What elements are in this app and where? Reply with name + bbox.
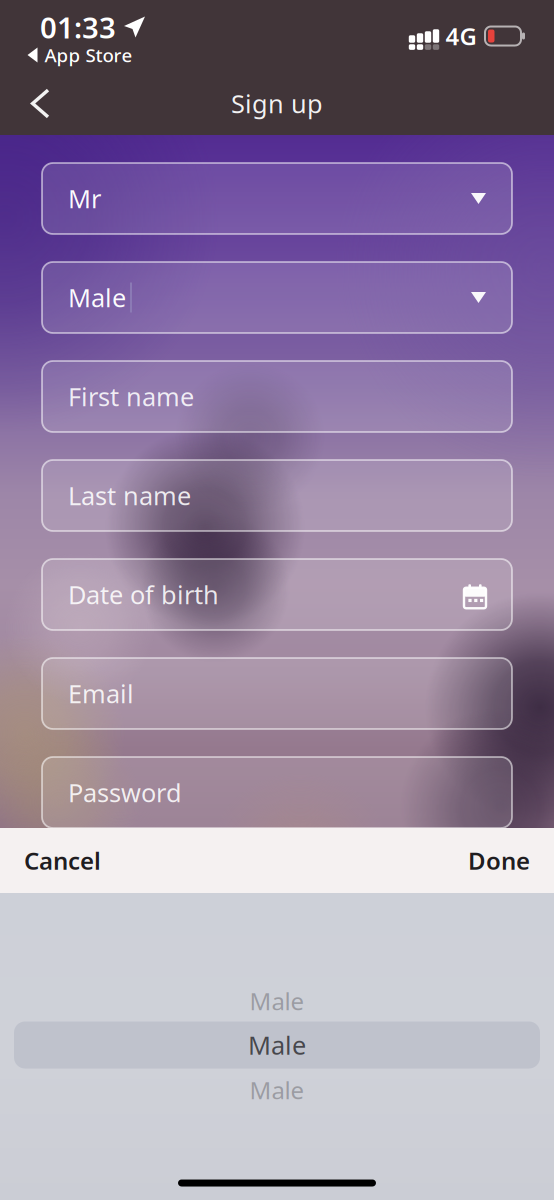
button[interactable]: Male: [42, 262, 512, 333]
staticText: Male: [249, 985, 304, 1017]
button[interactable]: Cancel: [0, 828, 134, 893]
staticText: Male: [249, 1074, 304, 1106]
staticText: 01:33: [40, 7, 116, 46]
staticText: 4G: [445, 20, 476, 52]
staticText: Email: [68, 677, 134, 710]
staticText: Cancel: [24, 845, 101, 876]
button[interactable]: Mr: [42, 163, 512, 234]
button[interactable]: Last name: [42, 460, 512, 531]
button[interactable]: Back: [0, 72, 66, 134]
button[interactable]: Date of birth: [42, 559, 512, 630]
button[interactable]: First name: [42, 361, 512, 432]
staticText: Done: [468, 845, 530, 876]
staticText: Male: [248, 1028, 306, 1062]
staticText: App Store: [44, 43, 132, 67]
staticText: First name: [68, 380, 194, 413]
button[interactable]: Done: [440, 828, 554, 893]
button[interactable]: Email: [42, 658, 512, 729]
staticText: Last name: [68, 479, 191, 512]
staticText: Mr: [68, 182, 101, 215]
staticText: Male: [68, 281, 126, 314]
staticText: Date of birth: [68, 578, 219, 611]
button[interactable]: Password: [42, 757, 512, 828]
staticText: Password: [68, 776, 182, 809]
staticText: Sign up: [231, 87, 323, 120]
